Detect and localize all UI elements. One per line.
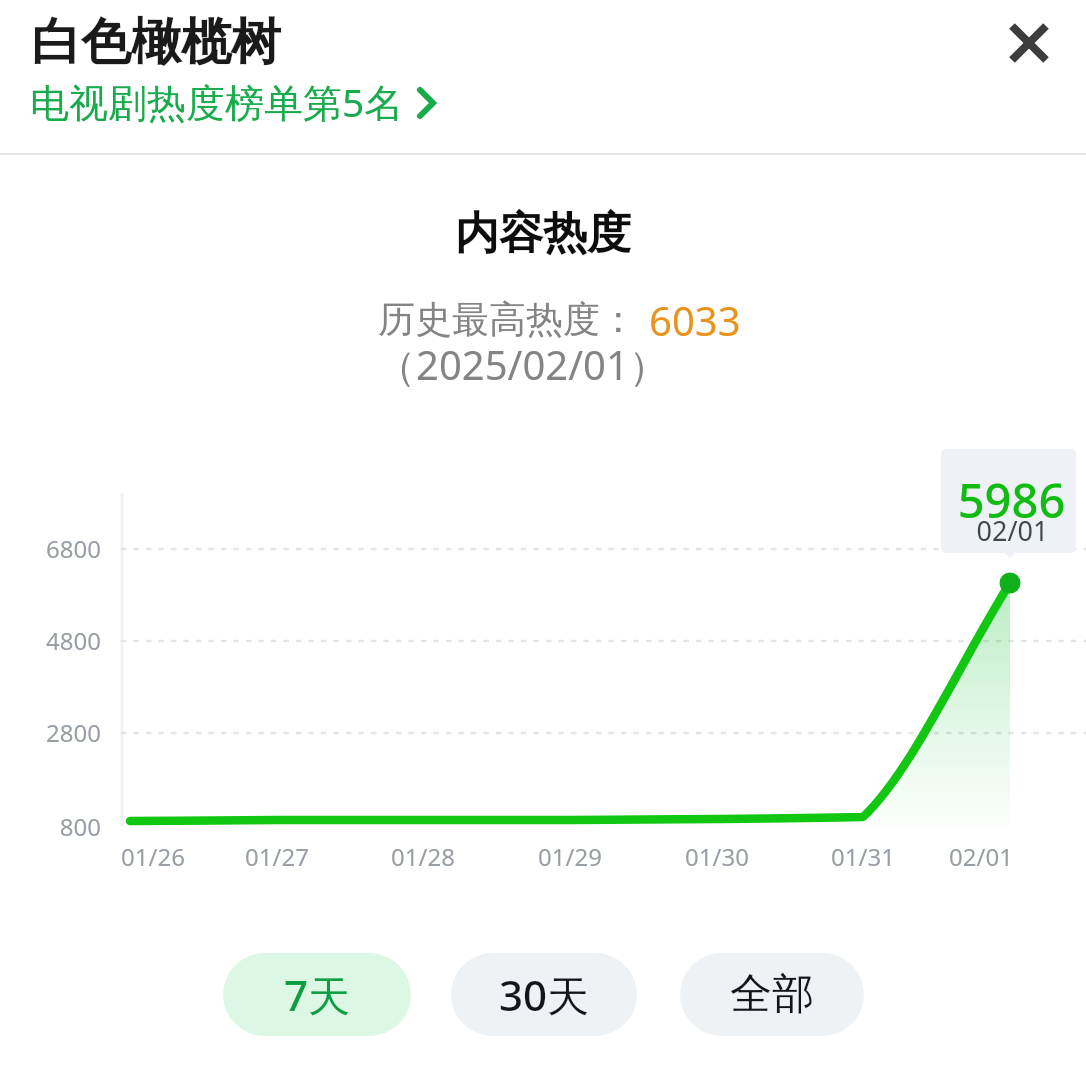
staticText: 历史最高热度： [378,296,637,343]
staticText: 电视剧热度榜单第5名 [30,75,404,128]
staticText: 6800 [0,532,101,565]
button[interactable]: 全部 [680,953,864,1036]
staticText: 800 [0,810,101,843]
staticText: 01/26 [73,840,233,873]
button[interactable]: 7天 [223,953,411,1036]
staticText: 2800 [0,716,101,749]
staticText: 全部 [730,968,814,1021]
button[interactable]: 30天 [451,953,637,1036]
staticText: 30天 [499,966,590,1023]
staticText: 02/01 [901,840,1061,873]
staticText: 02/01 [945,512,1076,549]
staticText: 01/28 [343,840,503,873]
staticText: 01/27 [197,840,357,873]
staticText: 5986 [944,468,1076,532]
staticText: 01/29 [490,840,650,873]
staticText: 01/30 [637,840,797,873]
button[interactable]: 电视剧热度榜单第5名 [24,71,448,125]
staticText: 7天 [284,966,351,1023]
staticText: 4800 [0,624,101,657]
staticText: （2025/02/01） [376,337,669,392]
staticText: 内容热度 [0,206,1086,261]
staticText: 6033 [649,293,741,347]
staticText: 01/31 [783,840,943,873]
staticText: 白色橄榄树 [31,11,281,74]
button[interactable]: Close [986,0,1071,85]
